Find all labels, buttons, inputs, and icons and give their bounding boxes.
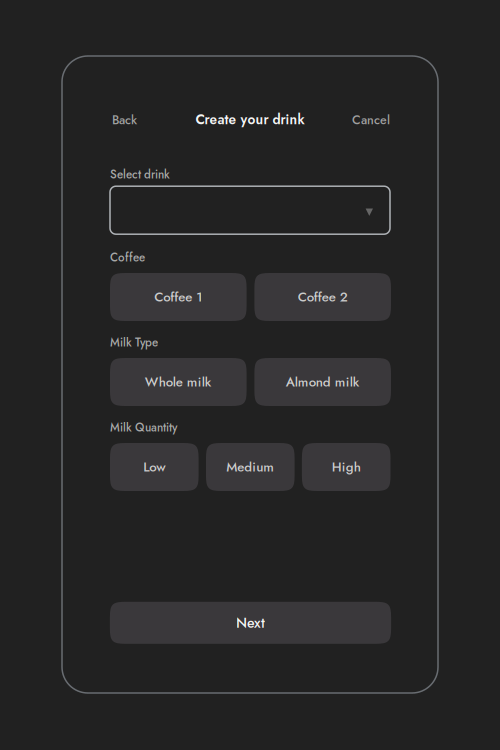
staticText: Create your drink bbox=[195, 110, 304, 129]
staticText: Next bbox=[236, 613, 265, 633]
button[interactable]: Cancel bbox=[352, 111, 390, 129]
button[interactable]: Coffee 2 bbox=[254, 273, 391, 321]
staticText: Almond milk bbox=[286, 372, 360, 392]
staticText: Milk Type bbox=[110, 334, 158, 351]
button[interactable]: High bbox=[302, 443, 390, 491]
staticText: Whole milk bbox=[145, 372, 212, 392]
staticText: High bbox=[332, 457, 361, 477]
button[interactable]: Medium bbox=[206, 443, 295, 491]
button[interactable]: Next bbox=[110, 602, 391, 644]
staticText: Milk Quantity bbox=[110, 419, 177, 436]
staticText: Coffee bbox=[110, 249, 145, 266]
staticText: Cancel bbox=[352, 111, 390, 129]
button[interactable]: Whole milk bbox=[110, 358, 247, 406]
button[interactable]: Back bbox=[112, 111, 137, 129]
button[interactable]: Low bbox=[110, 443, 199, 491]
staticText: Coffee 1 bbox=[154, 287, 202, 307]
staticText: Back bbox=[112, 111, 137, 129]
button[interactable]: Coffee 1 bbox=[110, 273, 247, 321]
button[interactable]: Almond milk bbox=[254, 358, 391, 406]
staticText: Low bbox=[143, 457, 165, 477]
button[interactable]: Select drink bbox=[110, 186, 390, 234]
staticText: Select drink bbox=[110, 166, 170, 183]
staticText: Coffee 2 bbox=[298, 287, 348, 307]
staticText: Medium bbox=[226, 457, 274, 477]
